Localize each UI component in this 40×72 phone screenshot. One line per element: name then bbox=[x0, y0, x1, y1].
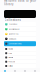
button[interactable]: Downloads bbox=[4, 37, 36, 41]
button[interactable]: Radio bbox=[20, 68, 30, 72]
staticText: Recently Played bbox=[9, 28, 20, 30]
button[interactable]: Settings bbox=[4, 64, 36, 68]
staticText: Artists bbox=[8, 52, 12, 54]
button[interactable]: Podcasts bbox=[4, 60, 36, 64]
button[interactable]: Browse bbox=[10, 68, 20, 72]
staticText: Made For You bbox=[9, 33, 19, 35]
staticText: Playlists bbox=[8, 48, 13, 50]
button[interactable]: Recently Played bbox=[4, 27, 36, 31]
button[interactable] bbox=[0, 10, 40, 18]
staticText: Welcome back to your library bbox=[4, 0, 36, 6]
button[interactable]: Playlists bbox=[4, 47, 36, 51]
button[interactable]: Albums bbox=[4, 55, 36, 59]
button[interactable]: Made For You bbox=[4, 32, 36, 36]
staticText: Collections bbox=[5, 18, 21, 22]
staticText: Settings bbox=[8, 65, 13, 67]
staticText: Downloads bbox=[9, 38, 17, 40]
button[interactable]: Continue listening bbox=[0, 41, 40, 46]
button[interactable]: Search bbox=[30, 68, 40, 72]
button[interactable]: Artists bbox=[4, 51, 36, 55]
button[interactable]: Home bbox=[0, 68, 10, 72]
staticText: Continue listening bbox=[9, 43, 22, 45]
staticText: Albums bbox=[8, 57, 13, 58]
staticText: Fresh Picks bbox=[9, 23, 18, 25]
button[interactable]: Fresh Picks bbox=[4, 22, 36, 27]
staticText: Podcasts bbox=[8, 61, 15, 63]
